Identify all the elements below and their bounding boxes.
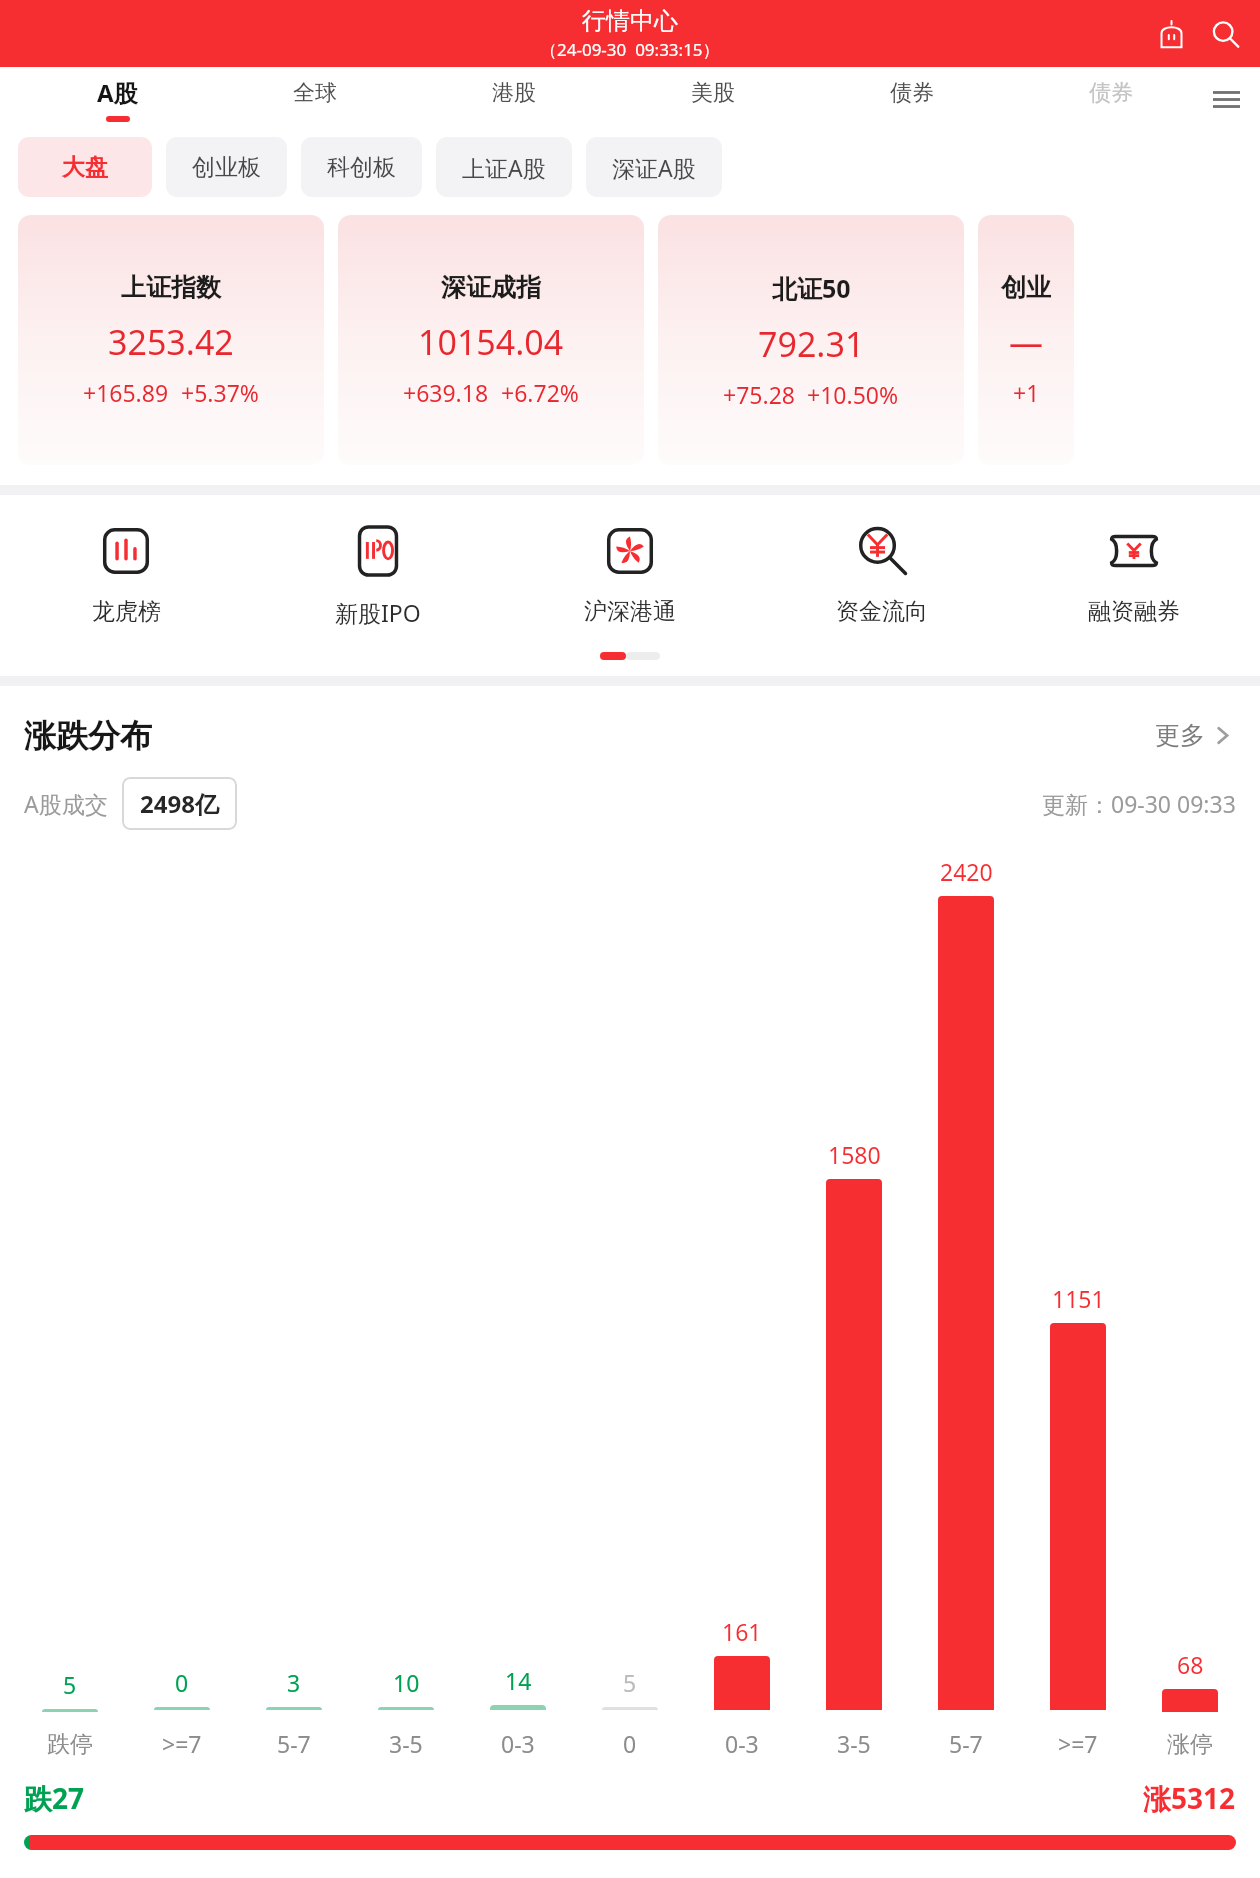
button[interactable]: 深证A股 — [586, 137, 722, 197]
staticText: 5-7 — [277, 1728, 311, 1759]
button[interactable]: 北证50 — [658, 215, 964, 465]
button[interactable]: 龙虎榜 — [0, 523, 252, 626]
staticText: A股 — [97, 76, 138, 109]
button[interactable]: 沪深港通 — [504, 523, 756, 626]
staticText: 全球 — [293, 79, 337, 107]
staticText: 10154.04 — [418, 319, 564, 365]
staticText: 深证成指 — [441, 272, 541, 303]
staticText: 龙虎榜 — [92, 597, 161, 626]
staticText: 创业板 — [192, 153, 261, 182]
staticText: 债券 — [1089, 79, 1133, 107]
staticText: 792.31 — [758, 321, 865, 367]
staticText: — — [1009, 319, 1043, 365]
staticText: 港股 — [492, 79, 536, 107]
staticText: 上证A股 — [462, 152, 546, 183]
staticText: 北证50 — [772, 271, 851, 305]
staticText: >=7 — [1058, 1728, 1098, 1759]
staticText: +1 — [1013, 377, 1040, 408]
staticText: 新股IPO — [335, 597, 421, 628]
staticText: 0-3 — [501, 1728, 535, 1759]
button[interactable]: 创业板 — [166, 137, 287, 197]
button[interactable]: 上证指数 — [18, 215, 324, 465]
button[interactable]: 上证A股 — [436, 137, 572, 197]
staticText: 融资融券 — [1088, 597, 1180, 626]
staticText: 债券 — [890, 79, 934, 107]
staticText: 跌停 — [47, 1730, 93, 1759]
staticText: +639.18 — [403, 377, 489, 408]
button[interactable]: 港股 — [414, 67, 613, 131]
button[interactable]: 创业 — [978, 215, 1074, 465]
staticText: 68 — [1177, 1649, 1204, 1680]
staticText: 3-5 — [837, 1728, 871, 1759]
staticText: A股成交 — [24, 788, 108, 819]
staticText: 上证指数 — [121, 272, 221, 303]
staticText: 10 — [393, 1667, 420, 1698]
staticText: 更多 — [1155, 720, 1205, 751]
staticText: 深证A股 — [612, 152, 696, 183]
staticText: +75.28 — [723, 379, 795, 410]
staticText: 大盘 — [62, 153, 108, 182]
staticText: （24-09-30 09:33:15） — [540, 38, 720, 61]
staticText: +165.89 — [83, 377, 169, 408]
staticText: 0 — [623, 1728, 637, 1759]
button[interactable]: 科创板 — [301, 137, 422, 197]
staticText: 3 — [287, 1667, 301, 1698]
staticText: 3-5 — [389, 1728, 423, 1759]
staticText: >=7 — [162, 1728, 202, 1759]
button[interactable]: 美股 — [613, 67, 812, 131]
staticText: 2498亿 — [140, 787, 219, 820]
button[interactable]: 全球 — [216, 67, 414, 131]
button[interactable]: 融资融券 — [1008, 523, 1260, 626]
staticText: 5 — [623, 1667, 637, 1698]
staticText: 行情中心 — [582, 6, 678, 36]
staticText: +10.50% — [807, 379, 899, 410]
staticText: 涨5312 — [1143, 1779, 1236, 1817]
staticText: +6.72% — [501, 377, 579, 408]
staticText: 科创板 — [327, 153, 396, 182]
button[interactable]: 大盘 — [18, 137, 152, 197]
button[interactable]: All categories — [1204, 77, 1248, 121]
staticText: +5.37% — [181, 377, 259, 408]
button[interactable]: A股 — [18, 67, 216, 131]
staticText: 5-7 — [949, 1728, 983, 1759]
staticText: 161 — [722, 1616, 762, 1647]
staticText: 0 — [175, 1667, 189, 1698]
staticText: 0-3 — [725, 1728, 759, 1759]
staticText: 创业 — [1001, 272, 1051, 303]
button[interactable]: 资金流向 — [756, 523, 1008, 626]
button[interactable]: Search — [1202, 11, 1248, 57]
staticText: 涨跌分布 — [24, 716, 152, 756]
button[interactable]: 新股IPO — [252, 523, 504, 628]
staticText: 1151 — [1052, 1283, 1105, 1314]
staticText: 美股 — [691, 79, 735, 107]
staticText: 跌27 — [24, 1779, 85, 1817]
staticText: 3253.42 — [108, 319, 234, 365]
staticText: 涨停 — [1167, 1730, 1213, 1759]
staticText: 1580 — [828, 1139, 881, 1170]
button[interactable]: 更多 — [1149, 714, 1238, 757]
staticText: 2420 — [940, 856, 993, 887]
button[interactable]: 债券 — [1011, 67, 1210, 131]
button[interactable]: Assistant — [1148, 11, 1194, 57]
staticText: 14 — [505, 1665, 532, 1696]
staticText: 沪深港通 — [584, 597, 676, 626]
button[interactable]: 深证成指 — [338, 215, 644, 465]
staticText: 更新：09-30 09:33 — [1042, 788, 1236, 819]
staticText: 5 — [63, 1669, 77, 1700]
button[interactable]: 债券 — [812, 67, 1011, 131]
staticText: 资金流向 — [836, 597, 928, 626]
